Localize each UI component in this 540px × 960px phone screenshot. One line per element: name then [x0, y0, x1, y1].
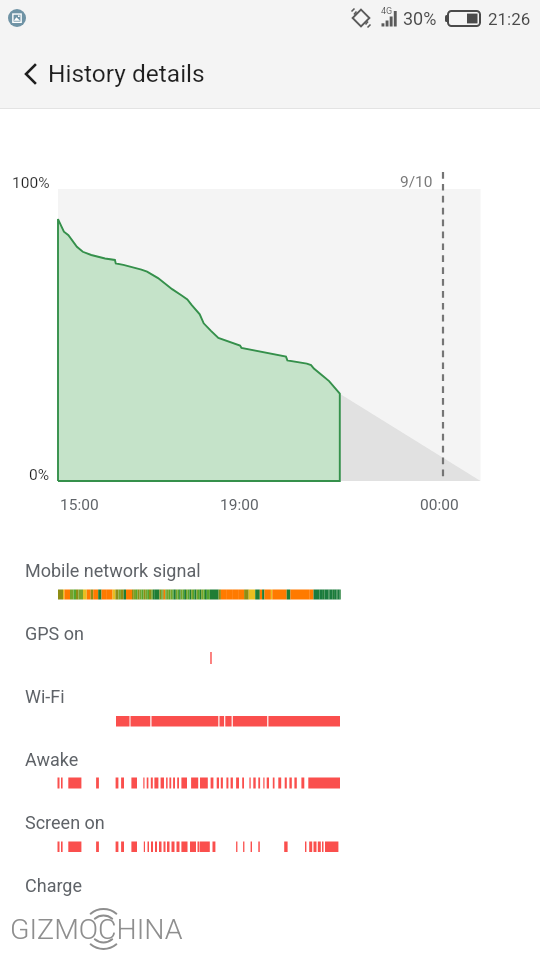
- button[interactable]: Back: [6, 50, 54, 98]
- staticText: 0%: [29, 466, 50, 484]
- staticText: History details: [48, 59, 205, 88]
- staticText: GIZMOCHINA: [10, 913, 183, 946]
- staticText: 19:00: [220, 496, 259, 514]
- staticText: 00:00: [420, 496, 459, 514]
- staticText: 100%: [12, 174, 50, 192]
- staticText: 4G: [381, 6, 393, 17]
- staticText: 30%: [403, 8, 437, 29]
- staticText: 9/10: [400, 173, 433, 191]
- staticText: 21:26: [488, 9, 531, 29]
- button[interactable]: Screenshot: [8, 9, 26, 27]
- staticText: Mobile network signal: [25, 560, 201, 581]
- staticText: 15:00: [60, 496, 99, 514]
- staticText: Wi-Fi: [25, 686, 65, 707]
- staticText: GPS on: [25, 623, 84, 644]
- staticText: Charge: [25, 875, 83, 896]
- staticText: Screen on: [25, 812, 105, 833]
- staticText: Awake: [25, 749, 79, 770]
